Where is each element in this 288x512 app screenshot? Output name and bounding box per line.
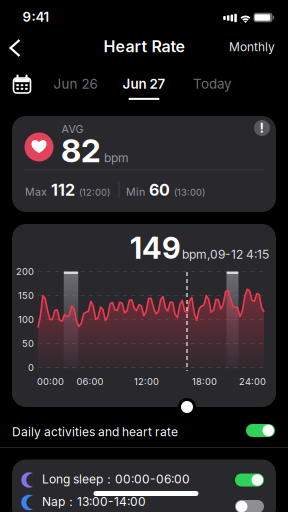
button[interactable]: Today bbox=[189, 72, 235, 96]
staticText: Jun 27 bbox=[122, 76, 165, 92]
staticText: 200 bbox=[16, 266, 34, 277]
button[interactable]: Long sleep schedule on bbox=[235, 473, 264, 486]
staticText: 00:00 bbox=[37, 376, 64, 387]
staticText: Jun 26 bbox=[53, 76, 97, 92]
button[interactable]: Monthly bbox=[198, 37, 278, 57]
staticText: Monthly bbox=[229, 40, 275, 54]
staticText: Today bbox=[193, 76, 231, 92]
staticText: bpm,09-12 4:15 bbox=[182, 247, 269, 261]
staticText: (12:00) bbox=[79, 187, 110, 198]
staticText: ! bbox=[259, 120, 264, 136]
button[interactable]: Calendar bbox=[9, 71, 35, 97]
staticText: 150 bbox=[18, 290, 34, 301]
staticText: Heart Rate bbox=[103, 37, 184, 56]
staticText: 18:00 bbox=[192, 376, 217, 387]
staticText: 60 bbox=[149, 181, 170, 199]
staticText: (13:00) bbox=[174, 187, 205, 198]
staticText: Nap：13:00-14:00 bbox=[42, 495, 146, 509]
staticText: Long sleep：00:00-06:00 bbox=[42, 472, 190, 487]
button[interactable]: Nap schedule off bbox=[235, 500, 264, 512]
staticText: 06:00 bbox=[76, 376, 103, 387]
button[interactable]: Jun 26 bbox=[49, 72, 101, 96]
staticText: 112 bbox=[51, 181, 75, 199]
staticText: 12:00 bbox=[134, 376, 159, 387]
staticText: 24:00 bbox=[239, 376, 266, 387]
staticText: bpm bbox=[104, 151, 129, 165]
button[interactable]: Info bbox=[254, 120, 270, 136]
button[interactable]: Daily activities and heart rate on bbox=[246, 424, 275, 437]
staticText: Daily activities and heart rate bbox=[12, 425, 178, 439]
staticText: 0 bbox=[28, 362, 34, 373]
button[interactable]: Back bbox=[5, 35, 24, 61]
staticText: 82 bbox=[61, 132, 101, 169]
staticText: 50 bbox=[22, 338, 34, 349]
button[interactable]: Jun 27 bbox=[122, 76, 165, 100]
staticText: 149 bbox=[130, 231, 181, 265]
staticText: Max bbox=[25, 186, 47, 198]
staticText: Min bbox=[126, 186, 145, 198]
staticText: 100 bbox=[18, 314, 34, 325]
staticText: AVG bbox=[61, 123, 83, 135]
staticText: 9:41 bbox=[22, 9, 49, 25]
